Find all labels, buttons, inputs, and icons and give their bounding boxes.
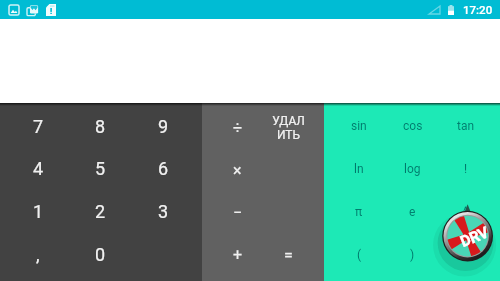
staticText: π xyxy=(355,205,363,219)
button[interactable]: tan xyxy=(439,105,492,147)
button[interactable]: ( xyxy=(332,233,386,276)
staticText: 7 xyxy=(33,116,44,137)
staticText: ( xyxy=(357,248,362,262)
staticText: 0 xyxy=(95,244,106,265)
staticText: ÷ xyxy=(233,118,243,137)
staticText: DRV xyxy=(458,223,491,251)
button[interactable]: 3 xyxy=(132,190,195,233)
button[interactable] xyxy=(439,233,492,276)
staticText: 8 xyxy=(95,116,106,137)
staticText: 17:20 xyxy=(463,3,493,16)
staticText: 1 xyxy=(33,201,44,222)
staticText: 5 xyxy=(95,158,106,179)
button[interactable]: 0 xyxy=(69,233,132,276)
staticText: log xyxy=(404,162,421,176)
staticText: 6 xyxy=(158,158,169,179)
button[interactable]: π xyxy=(332,190,386,233)
other: Screenshot gallery xyxy=(27,5,38,16)
button[interactable]: ^ xyxy=(439,190,492,233)
button[interactable]: ln xyxy=(332,147,386,190)
staticText: ! xyxy=(464,162,468,176)
button[interactable]: × xyxy=(212,147,263,190)
button[interactable]: 5 xyxy=(69,147,132,190)
button[interactable]: УДАЛ ИТЬ xyxy=(263,105,314,147)
button[interactable]: 8 xyxy=(69,105,132,147)
button[interactable]: , xyxy=(7,233,69,276)
staticText: 4 xyxy=(33,158,44,179)
staticText: 3 xyxy=(158,201,169,222)
button[interactable]: e xyxy=(386,190,439,233)
staticText: = xyxy=(284,246,293,265)
button[interactable]: 9 xyxy=(132,105,195,147)
button[interactable]: log xyxy=(386,147,439,190)
button[interactable]: 6 xyxy=(132,147,195,190)
button[interactable]: 4 xyxy=(7,147,69,190)
button[interactable]: 1 xyxy=(7,190,69,233)
button[interactable]: cos xyxy=(386,105,439,147)
button[interactable]: ! xyxy=(439,147,492,190)
button[interactable]: 7 xyxy=(7,105,69,147)
staticText: ^ xyxy=(463,205,469,219)
staticText: ) xyxy=(410,248,415,262)
button[interactable]: sin xyxy=(332,105,386,147)
staticText: tan xyxy=(457,119,475,133)
button[interactable]: − xyxy=(212,190,263,233)
other: Screenshot captured xyxy=(9,5,19,15)
staticText: + xyxy=(233,245,243,264)
staticText: − xyxy=(233,203,243,222)
button[interactable]: ÷ xyxy=(212,105,263,147)
staticText: 2 xyxy=(95,201,106,222)
staticText: УДАЛ ИТЬ xyxy=(272,114,305,142)
staticText: cos xyxy=(403,119,423,133)
other: Storage space running out xyxy=(46,4,56,16)
staticText: × xyxy=(233,161,242,180)
staticText: ln xyxy=(354,162,364,176)
staticText: 9 xyxy=(158,116,169,137)
staticText: sin xyxy=(351,119,367,133)
button[interactable]: 2 xyxy=(69,190,132,233)
staticText: , xyxy=(36,244,40,265)
button[interactable]: + xyxy=(212,233,263,276)
button[interactable]: ) xyxy=(386,233,439,276)
button[interactable]: = xyxy=(263,233,314,276)
staticText: e xyxy=(409,205,416,219)
